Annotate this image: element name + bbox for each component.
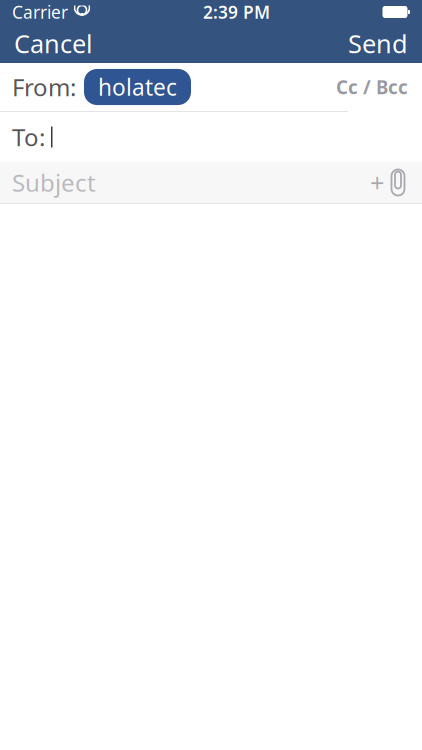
- button[interactable]: Send: [334, 19, 422, 68]
- staticText: 2:39 PM: [203, 0, 270, 23]
- staticText: Cc / Bcc: [336, 75, 408, 99]
- button[interactable]: To:: [0, 112, 422, 162]
- staticText: +: [370, 166, 384, 199]
- staticText: Send: [348, 27, 408, 60]
- button[interactable]: Cancel: [0, 19, 107, 68]
- button[interactable]: Cc / Bcc: [326, 67, 418, 107]
- staticText: Cancel: [14, 27, 93, 60]
- staticText: From:: [12, 71, 76, 103]
- staticText: Subject: [12, 167, 96, 198]
- staticText: To:: [12, 121, 45, 153]
- button[interactable]: Subject: [0, 162, 422, 203]
- staticText: holatec: [98, 72, 177, 102]
- button[interactable]: holatec: [84, 69, 191, 105]
- staticText: Carrier: [12, 0, 68, 23]
